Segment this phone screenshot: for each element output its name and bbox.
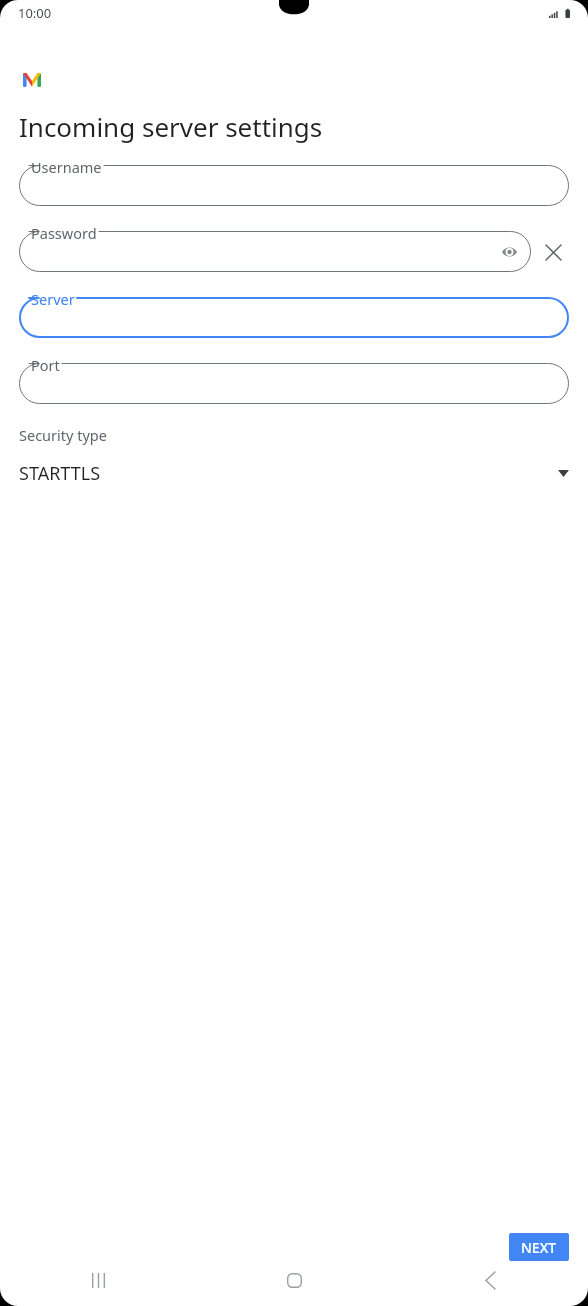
button[interactable]: Recents <box>0 1254 196 1306</box>
staticText: 10:00 <box>18 4 52 22</box>
staticText: NEXT <box>521 1238 557 1257</box>
button[interactable]: Port <box>19 363 569 404</box>
button[interactable]: Clear <box>537 236 569 268</box>
button[interactable]: Show password <box>495 238 523 266</box>
staticText: Security type <box>19 425 107 445</box>
button[interactable]: Home <box>196 1254 392 1306</box>
button[interactable]: Server <box>19 297 569 338</box>
staticText: Server <box>31 289 75 309</box>
staticText: Password <box>31 223 97 243</box>
button[interactable]: STARTTLS <box>19 457 569 489</box>
staticText: Incoming server settings <box>19 109 323 144</box>
staticText: Port <box>31 355 60 375</box>
staticText: Username <box>31 157 102 177</box>
button[interactable]: Back <box>392 1254 588 1306</box>
button[interactable]: NEXT <box>509 1233 569 1261</box>
button[interactable]: Password <box>19 231 531 272</box>
staticText: STARTTLS <box>19 461 101 486</box>
button[interactable]: Username <box>19 165 569 206</box>
